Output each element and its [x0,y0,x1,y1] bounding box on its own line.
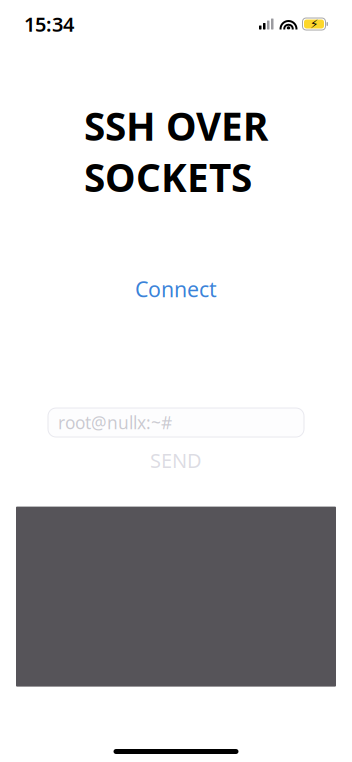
staticText: Connect [135,275,217,303]
staticText: SEND [150,447,202,474]
button[interactable]: Connect [121,269,231,309]
staticText: ⚡︎ [310,17,318,31]
staticText: 15:34 [24,11,74,37]
staticText: root@nullx:~# [58,411,172,434]
staticText: SSH OVER SOCKETS [84,100,268,203]
button[interactable]: SEND [134,443,218,478]
button[interactable]: Command input [48,408,304,437]
